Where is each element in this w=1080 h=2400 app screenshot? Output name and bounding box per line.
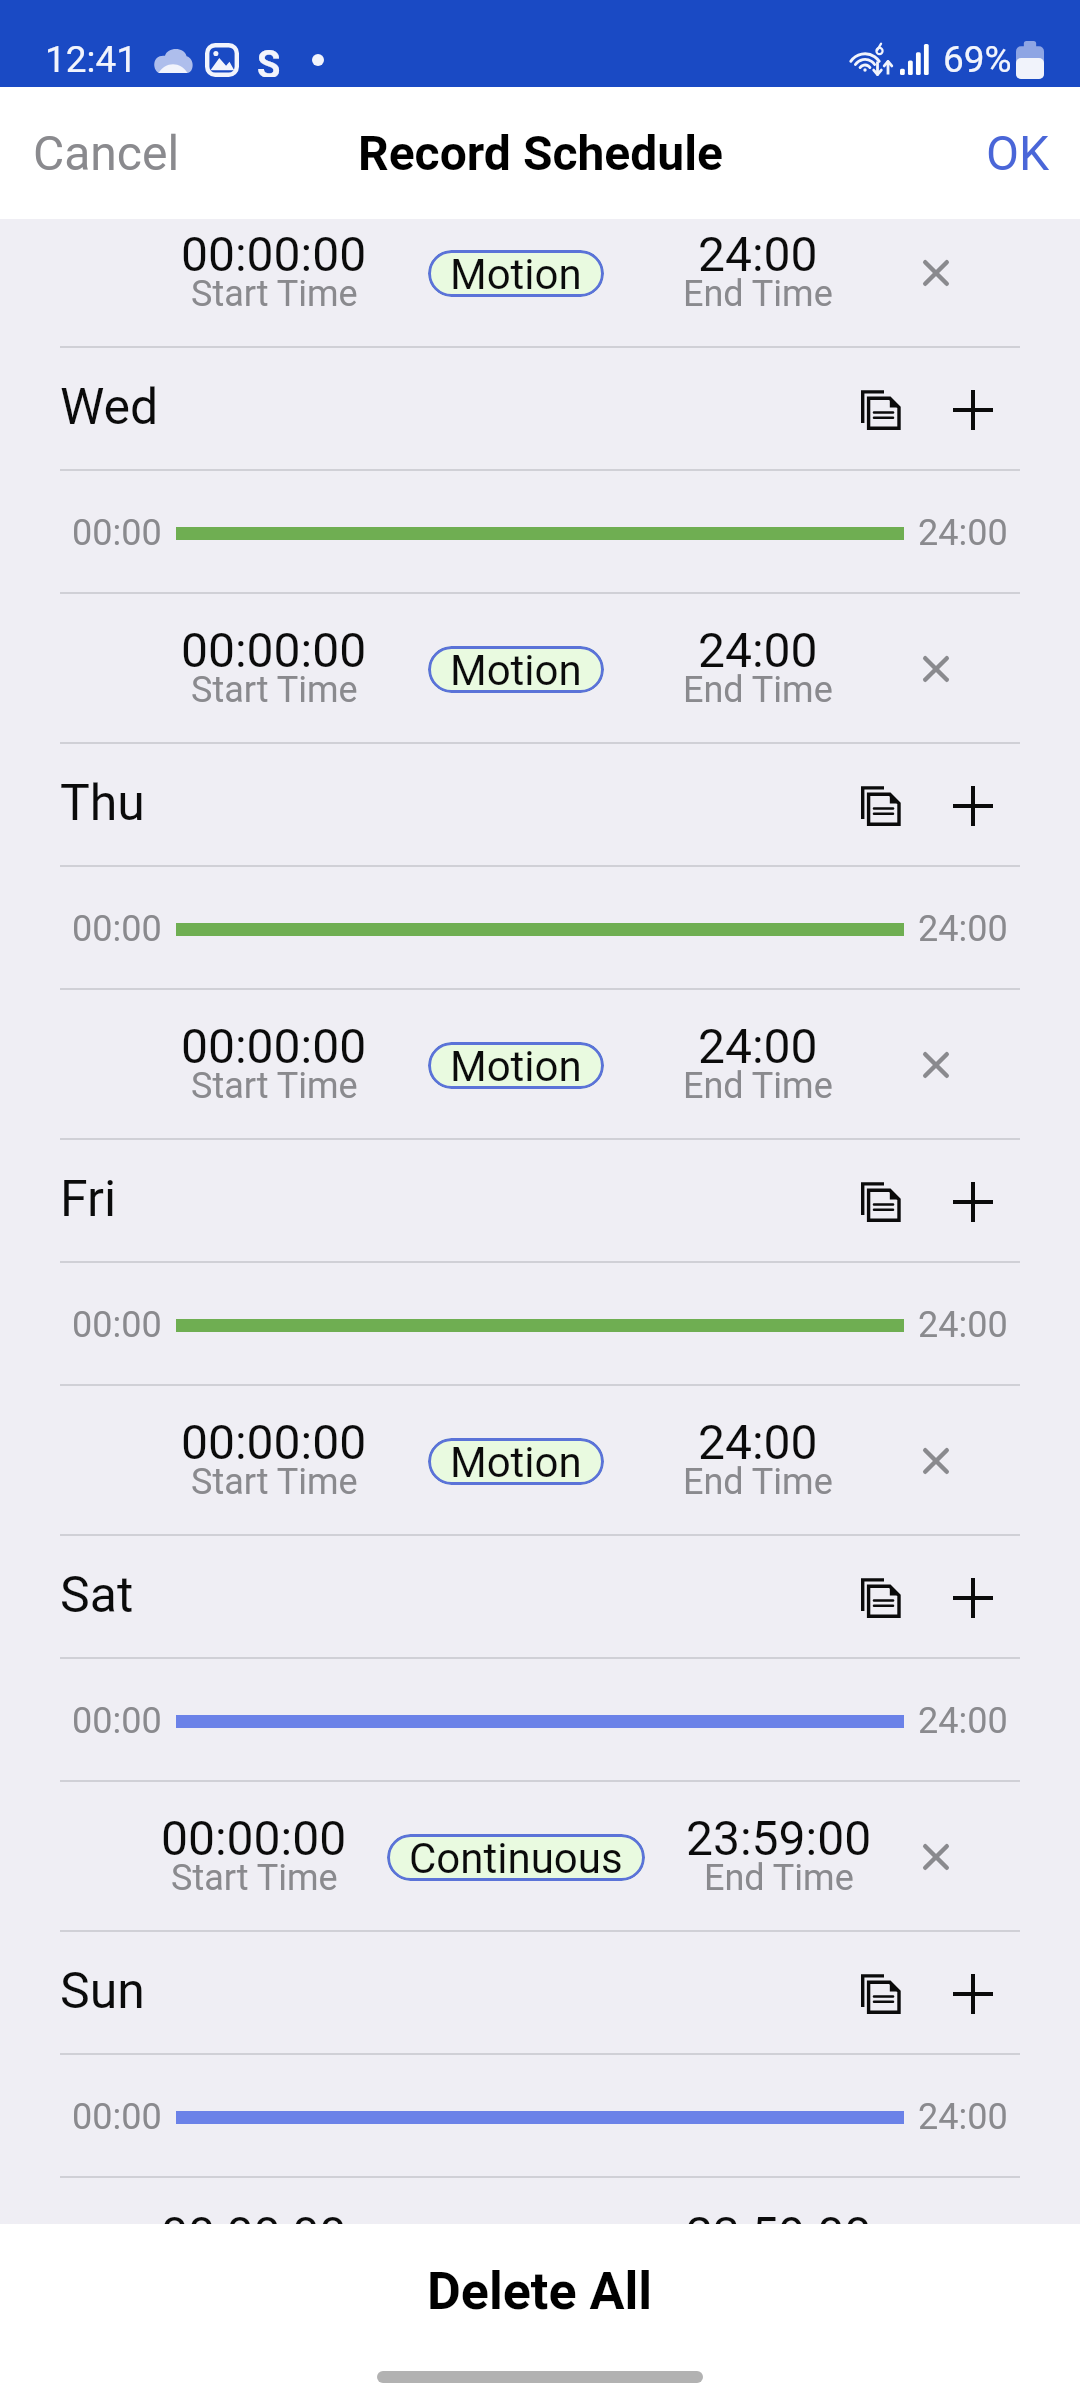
staticText: End Time	[683, 1461, 833, 1503]
staticText: Start Time	[191, 669, 358, 711]
staticText: End Time	[683, 1065, 833, 1107]
button[interactable]: Add schedule	[942, 1963, 1004, 2025]
staticText: 00:00	[72, 1700, 162, 1742]
staticText: 23:59:00	[686, 2206, 872, 2224]
button[interactable]: Copy schedule	[849, 379, 911, 441]
staticText: End Time	[704, 1857, 854, 1899]
button[interactable]: 00:00	[0, 1659, 1080, 1782]
button[interactable]: Copy schedule	[849, 1171, 911, 1233]
button[interactable]: 00:00	[0, 1263, 1080, 1386]
staticText: Motion	[450, 1042, 582, 1089]
staticText: 12:41	[45, 38, 138, 81]
staticText: 24:00	[918, 1304, 1008, 1346]
button[interactable]: Cancel	[0, 87, 206, 219]
staticText: 24:00	[698, 1414, 818, 1470]
staticText: 00:00:00	[181, 226, 367, 282]
button[interactable]: Copy schedule	[849, 1567, 911, 1629]
staticText: 24:00	[918, 512, 1008, 554]
staticText: Start Time	[191, 273, 358, 315]
staticText: 00:00:00	[161, 2206, 347, 2224]
button[interactable]: Delete All	[0, 2224, 1080, 2358]
button[interactable]: Add schedule	[942, 1171, 1004, 1233]
staticText: 00:00	[72, 512, 162, 554]
button[interactable]: Motion	[428, 1438, 604, 1485]
staticText: 00:00	[72, 2096, 162, 2138]
button[interactable]: 00:00:00	[0, 219, 1080, 348]
button[interactable]: Continuous	[387, 1834, 645, 1881]
button[interactable]: Add schedule	[942, 775, 1004, 837]
button[interactable]: 00:00:00	[0, 594, 1080, 744]
staticText: Sat	[60, 1566, 134, 1625]
staticText: Start Time	[191, 1461, 358, 1503]
staticText: 24:00	[918, 908, 1008, 950]
staticText: Wed	[60, 378, 159, 437]
staticText: 00:00:00	[181, 1018, 367, 1074]
button[interactable]: 00:00:00	[0, 990, 1080, 1140]
staticText: 24:00	[698, 1018, 818, 1074]
staticText: Motion	[450, 1438, 582, 1485]
button[interactable]: 00:00	[0, 471, 1080, 594]
staticText: Motion	[450, 646, 582, 693]
button[interactable]: Delete schedule	[912, 1782, 960, 1932]
staticText: Cancel	[33, 125, 180, 181]
button[interactable]: Motion	[428, 1042, 604, 1089]
staticText: 00:00	[72, 1304, 162, 1346]
staticText: Sun	[60, 1962, 145, 2021]
button[interactable]: 00:00	[0, 2055, 1080, 2178]
button[interactable]: Delete schedule	[912, 1386, 960, 1536]
staticText: Start Time	[191, 1065, 358, 1107]
button[interactable]: 00:00:00	[0, 2178, 1080, 2224]
button[interactable]: Motion	[428, 646, 604, 693]
staticText: 69%	[943, 38, 1012, 81]
staticText: Record Schedule	[358, 125, 723, 181]
button[interactable]: Delete schedule	[912, 219, 960, 348]
staticText: OK	[986, 125, 1050, 181]
staticText: Fri	[60, 1170, 117, 1229]
button[interactable]: 00:00:00	[0, 1782, 1080, 1932]
staticText: 00:00	[72, 908, 162, 950]
staticText: 24:00	[918, 2096, 1008, 2138]
staticText: Thu	[60, 774, 145, 833]
button[interactable]: OK	[960, 87, 1080, 219]
button[interactable]: Add schedule	[942, 1567, 1004, 1629]
button[interactable]: Copy schedule	[849, 775, 911, 837]
button[interactable]: Motion	[428, 250, 604, 297]
staticText: Motion	[450, 250, 582, 297]
staticText: Continuous	[409, 1834, 623, 1881]
button[interactable]: Delete schedule	[912, 594, 960, 744]
staticText: Start Time	[171, 1857, 338, 1899]
button[interactable]: 00:00:00	[0, 1386, 1080, 1536]
staticText: Delete All	[427, 2261, 653, 2322]
button[interactable]: Copy schedule	[849, 1963, 911, 2025]
staticText: 24:00	[698, 622, 818, 678]
button[interactable]: Add schedule	[942, 379, 1004, 441]
staticText: 23:59:00	[686, 1810, 872, 1866]
button[interactable]: Delete schedule	[912, 990, 960, 1140]
staticText: S	[257, 43, 281, 77]
staticText: 00:00:00	[181, 1414, 367, 1470]
staticText: 24:00	[918, 1700, 1008, 1742]
staticText: 00:00:00	[181, 622, 367, 678]
button[interactable]: 00:00	[0, 867, 1080, 990]
staticText: 24:00	[698, 226, 818, 282]
staticText: End Time	[683, 669, 833, 711]
staticText: 00:00:00	[161, 1810, 347, 1866]
staticText: End Time	[683, 273, 833, 315]
